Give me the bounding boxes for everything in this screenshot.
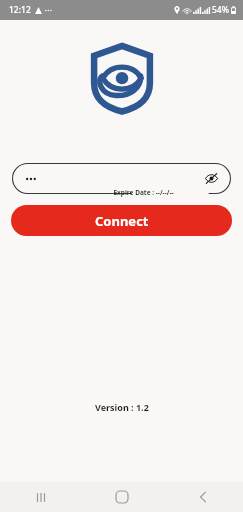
staticText: Expire Date : --/--/-- bbox=[113, 188, 174, 197]
staticText: 12:12 bbox=[9, 4, 31, 16]
button[interactable]: Expire Date : --/--/-- bbox=[12, 163, 231, 194]
staticText: 54% bbox=[212, 4, 229, 16]
button[interactable]: Connect bbox=[11, 205, 232, 236]
button[interactable]: Back bbox=[162, 482, 243, 512]
button[interactable]: Recent apps bbox=[0, 482, 81, 512]
staticText: Version : 1.2 bbox=[95, 401, 149, 413]
staticText: Connect bbox=[95, 212, 149, 230]
button[interactable]: Home bbox=[81, 482, 162, 512]
button[interactable]: Toggle password visibility bbox=[203, 170, 220, 187]
